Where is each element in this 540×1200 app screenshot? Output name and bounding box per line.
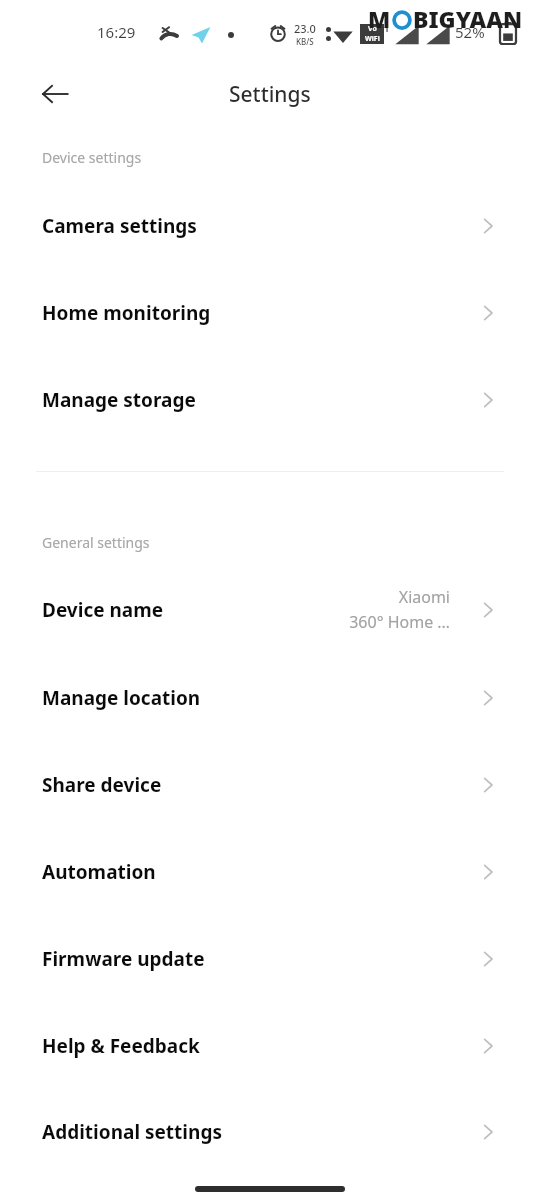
staticText: M [368, 3, 391, 34]
staticText: Camera settings [42, 213, 197, 239]
button[interactable]: Back [31, 70, 79, 118]
staticText: Settings [229, 80, 311, 109]
staticText: Device settings [42, 148, 142, 167]
staticText: General settings [42, 533, 150, 552]
button[interactable]: Home monitoring [0, 269, 540, 356]
button[interactable]: Device name [0, 566, 540, 653]
staticText: 23.0 [294, 21, 316, 36]
staticText: Manage storage [42, 387, 196, 413]
staticText: 1 [384, 22, 390, 34]
staticText: WiFi [365, 34, 380, 44]
staticText: 360° Home … [349, 611, 450, 633]
button[interactable]: Help & Feedback [0, 1002, 540, 1089]
button[interactable]: Additional settings [0, 1088, 540, 1175]
staticText: 52% [455, 22, 485, 42]
staticText: Firmware update [42, 946, 205, 972]
button[interactable]: Firmware update [0, 915, 540, 1002]
staticText: Additional settings [42, 1119, 222, 1145]
staticText: Automation [42, 859, 156, 885]
staticText: Device name [42, 597, 164, 623]
button[interactable]: Automation [0, 828, 540, 915]
staticText: 16:29 [97, 22, 136, 42]
staticText: Share device [42, 772, 162, 798]
button[interactable]: Camera settings [0, 182, 540, 269]
button[interactable]: Manage location [0, 654, 540, 741]
button[interactable]: Share device [0, 741, 540, 828]
staticText: Vo [368, 24, 377, 34]
staticText: Help & Feedback [42, 1033, 200, 1059]
staticText: Xiaomi [398, 586, 450, 608]
button[interactable]: Manage storage [0, 356, 540, 443]
staticText: Home monitoring [42, 300, 211, 326]
staticText: KB/S [296, 36, 314, 47]
staticText: BIGYAAN [413, 3, 523, 34]
staticText: Manage location [42, 685, 201, 711]
